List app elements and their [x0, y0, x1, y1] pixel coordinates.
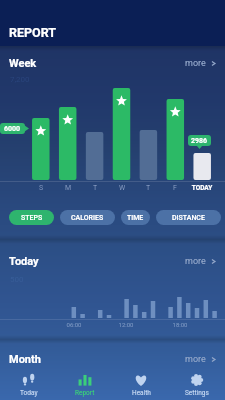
button[interactable]: Report — [57, 367, 113, 400]
button[interactable]: TIME — [121, 210, 150, 225]
staticText: Month — [9, 353, 41, 366]
staticText: TODAY — [187, 184, 217, 192]
staticText: W — [107, 184, 137, 192]
staticText: 500 — [10, 275, 24, 284]
button[interactable]: more — [185, 58, 217, 69]
staticText: TIME — [127, 214, 144, 222]
button[interactable]: Health — [113, 367, 169, 400]
staticText: M — [53, 184, 83, 192]
button[interactable]: Settings — [169, 367, 225, 400]
staticText: 6000 — [4, 125, 21, 133]
staticText: 7,200 — [10, 75, 30, 84]
staticText: Today — [20, 389, 38, 397]
button[interactable]: DISTANCE — [156, 210, 221, 225]
staticText: Settings — [185, 389, 209, 397]
staticText: more — [185, 354, 206, 365]
button[interactable]: CALORIES — [60, 210, 115, 225]
staticText: 12:00 — [112, 321, 140, 328]
staticText: more — [185, 58, 206, 69]
staticText: 2986 — [191, 137, 208, 145]
staticText: Today — [9, 255, 39, 268]
staticText: 18:00 — [166, 321, 194, 328]
staticText: T — [133, 184, 163, 192]
staticText: F — [160, 184, 190, 192]
staticText: DISTANCE — [172, 214, 205, 222]
staticText: 06:00 — [60, 321, 88, 328]
staticText: Health — [132, 389, 151, 397]
staticText: Week — [9, 57, 37, 70]
button[interactable]: STEPS — [9, 210, 54, 225]
staticText: CALORIES — [71, 214, 104, 222]
button[interactable]: more — [185, 256, 217, 267]
staticText: REPORT — [9, 25, 57, 40]
staticText: more — [185, 256, 206, 267]
staticText: S — [26, 184, 56, 192]
staticText: Report — [75, 389, 95, 397]
staticText: T — [80, 184, 110, 192]
button[interactable]: more — [185, 354, 217, 365]
staticText: STEPS — [21, 214, 43, 222]
button[interactable]: Today — [0, 367, 57, 400]
